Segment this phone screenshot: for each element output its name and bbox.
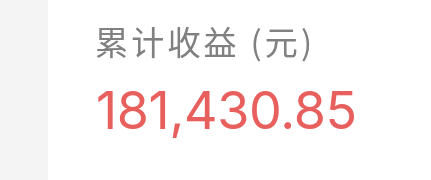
button[interactable]: 累计收益 (元) <box>95 17 316 65</box>
button[interactable]: 181,430.85 <box>96 79 357 142</box>
